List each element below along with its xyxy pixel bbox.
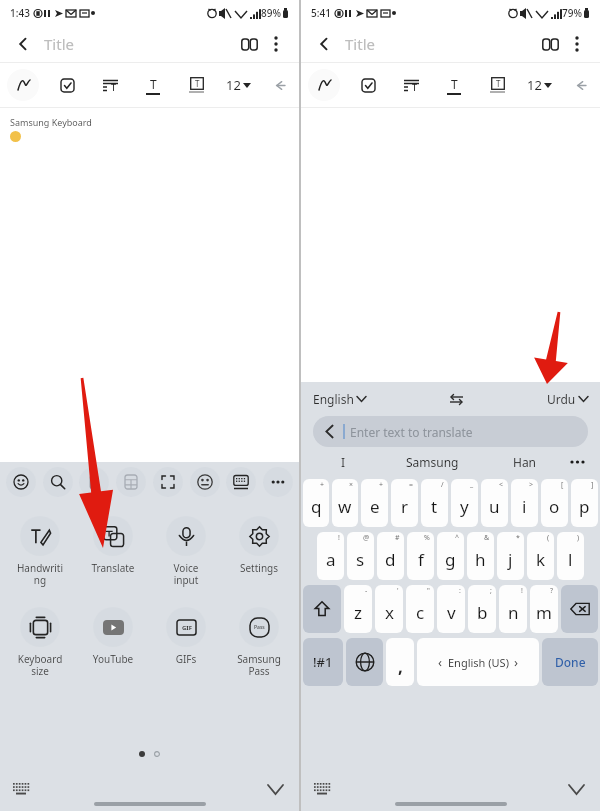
button[interactable]: Collapse [567,72,593,98]
button[interactable]: ? [530,585,558,633]
staticText: ) [577,533,580,543]
button[interactable]: Settings [226,516,292,575]
button[interactable]: + [361,479,388,527]
button[interactable]: Underline [439,70,469,100]
staticText: T [111,81,117,93]
staticText: 1:43 [10,6,30,20]
button[interactable]: Samsung [378,454,487,470]
button[interactable]: ! [499,585,527,633]
button[interactable]: < [481,479,508,527]
staticText: × [349,480,354,490]
button[interactable]: Translate [80,516,146,575]
button[interactable]: Urdu [547,391,588,407]
button[interactable]: ) [557,532,584,580]
button[interactable]: Reading view [536,30,564,58]
staticText: Samsung Keyboard [10,116,92,128]
button[interactable]: 12 [525,76,554,94]
button[interactable]: @ [347,532,374,580]
button[interactable]: More options [263,31,289,57]
button[interactable]: ( [527,532,554,580]
button[interactable]: Hide keyboard [263,777,287,801]
button[interactable]: Checklist [52,70,82,100]
button[interactable]: + [303,479,329,527]
button[interactable]: Back [311,31,337,57]
staticText: Done [555,654,586,670]
staticText: e [370,495,380,518]
button[interactable]: " [406,585,434,633]
button[interactable]: Pen [7,69,39,101]
button[interactable]: _ [451,479,478,527]
button[interactable]: 12 [224,76,253,94]
button[interactable]: : [437,585,465,633]
button[interactable]: GIF [153,607,219,666]
button[interactable]: # [377,532,404,580]
button[interactable]: ] [571,479,598,527]
button[interactable]: Shift [303,585,341,633]
button[interactable]: Calculator [116,467,146,497]
button[interactable]: More options [564,31,590,57]
button[interactable]: Voice input [153,516,219,587]
button[interactable]: Underline [138,70,168,100]
button[interactable]: Reading view [235,30,263,58]
staticText: T [496,78,501,89]
staticText: T [451,76,458,92]
button[interactable]: ' [375,585,403,633]
button[interactable]: Hide keyboard [564,777,588,801]
button[interactable]: = [391,479,418,527]
button[interactable]: Keyboard size [7,607,73,678]
button[interactable]: Keyboard [10,778,32,800]
button[interactable]: Backspace [561,585,598,633]
button[interactable]: Language [346,638,383,686]
button[interactable]: ‹ [417,638,539,686]
button[interactable]: Checklist [353,70,383,100]
staticText: w [338,495,352,518]
button[interactable]: Emoji [6,467,36,497]
button[interactable]: English [313,391,366,407]
staticText: ' [397,586,399,596]
button[interactable]: Han [487,454,562,470]
button[interactable]: / [421,479,448,527]
button[interactable]: Done [542,638,598,686]
button[interactable]: More suggestions [562,460,592,464]
button[interactable]: More [263,467,293,497]
button[interactable]: > [511,479,538,527]
staticText: ‹ [438,653,443,671]
button[interactable]: % [407,532,434,580]
button[interactable]: Collapse [266,72,292,98]
button[interactable]: Keyboard mode [226,467,256,497]
button[interactable]: Back [10,31,36,57]
button[interactable]: Text style [181,70,211,100]
button[interactable]: , [386,638,414,686]
button[interactable]: × [332,479,358,527]
button[interactable]: Handwriti ng [7,516,73,587]
button[interactable]: ^ [437,532,464,580]
button[interactable]: [ [541,479,568,527]
button[interactable]: Enter text to translate [313,416,588,447]
button[interactable]: Text style [482,70,512,100]
button[interactable]: Keyboard [311,778,333,800]
button[interactable]: Sticker [190,467,220,497]
button[interactable]: Move [153,467,183,497]
button[interactable]: ! [317,532,344,580]
button[interactable]: Paragraph [396,70,426,100]
staticText: c [416,601,425,624]
button[interactable]: Pass [226,607,292,678]
button[interactable]: Swap languages [444,387,468,411]
button[interactable]: I [309,454,378,470]
staticText: 12 [226,76,241,94]
button[interactable]: - [344,585,372,633]
button[interactable]: & [467,532,494,580]
button[interactable]: YouTube [80,607,146,666]
button[interactable]: * [497,532,524,580]
staticText: YouTube [80,652,146,666]
staticText: q [311,495,322,518]
staticText: n [508,601,519,624]
button[interactable]: Search [43,467,73,497]
button[interactable]: Paragraph [95,70,125,100]
staticText: d [385,548,396,571]
button[interactable]: ; [468,585,496,633]
staticText: x [385,601,394,624]
button[interactable]: !#1 [303,638,343,686]
button[interactable]: Clipboard [79,467,109,497]
button[interactable]: Pen [308,69,340,101]
